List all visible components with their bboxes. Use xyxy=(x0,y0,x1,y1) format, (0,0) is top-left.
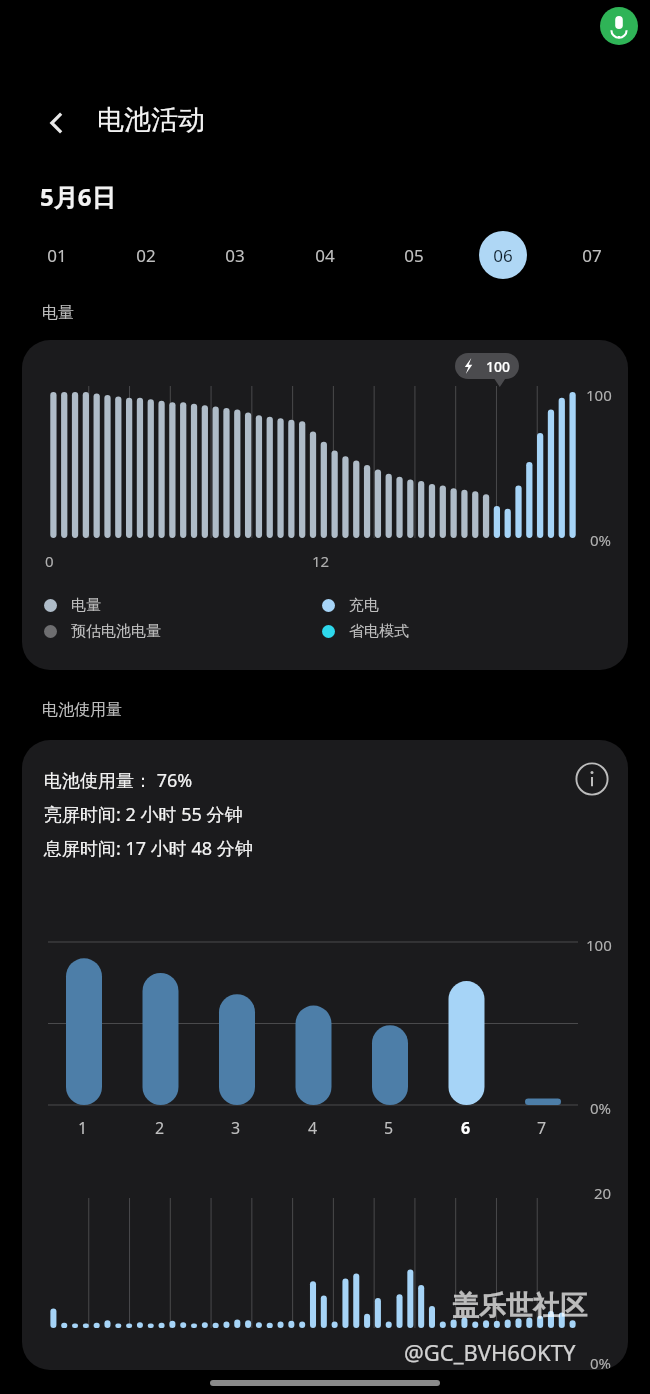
staticText: 06 xyxy=(493,244,513,267)
staticText: 20 xyxy=(594,1183,612,1203)
staticText: 1 xyxy=(78,1117,88,1139)
staticText: 0% xyxy=(590,1353,612,1370)
staticText: 亮屏时间: 2 小时 55 分钟 xyxy=(44,802,243,827)
staticText: 息屏时间: 17 小时 48 分钟 xyxy=(44,836,253,861)
button[interactable]: 07 xyxy=(568,231,616,279)
staticText: 省电模式 xyxy=(349,622,409,641)
staticText: 12 xyxy=(312,551,330,571)
staticText: 100 xyxy=(486,357,511,376)
staticText: 01 xyxy=(47,244,67,267)
staticText: 100 xyxy=(586,935,612,955)
staticText: @GC_BVH6OKTY xyxy=(404,1337,576,1367)
button[interactable]: Voice assistant xyxy=(600,7,638,45)
staticText: 2 xyxy=(155,1117,165,1139)
button[interactable]: Information xyxy=(22,740,628,1370)
staticText: 04 xyxy=(315,244,335,267)
staticText: 6 xyxy=(461,1117,471,1139)
button[interactable]: 100 xyxy=(22,340,628,670)
button[interactable]: 01 xyxy=(33,231,81,279)
button[interactable]: 02 xyxy=(122,231,170,279)
button[interactable]: 03 xyxy=(211,231,259,279)
staticText: 100 xyxy=(586,385,612,405)
button[interactable]: 04 xyxy=(301,231,349,279)
staticText: 4 xyxy=(308,1117,318,1139)
staticText: 03 xyxy=(225,244,245,267)
staticText: 电池使用量 xyxy=(42,700,122,720)
staticText: 电量 xyxy=(71,596,101,615)
staticText: 05 xyxy=(404,244,424,267)
staticText: 7 xyxy=(537,1117,547,1139)
staticText: 电池活动 xyxy=(97,103,205,137)
staticText: 07 xyxy=(582,244,602,267)
staticText: 盖乐世社区 xyxy=(452,1289,587,1323)
staticText: 0% xyxy=(590,1098,612,1118)
staticText: 预估电池电量 xyxy=(71,622,161,641)
staticText: 02 xyxy=(136,244,156,267)
staticText: 0 xyxy=(45,551,54,571)
staticText: 电池使用量： 76% xyxy=(44,768,193,793)
staticText: 电量 xyxy=(42,303,74,323)
staticText: 5月6日 xyxy=(40,180,116,213)
staticText: 充电 xyxy=(349,596,379,615)
button[interactable]: Back xyxy=(34,100,80,146)
staticText: 3 xyxy=(231,1117,241,1139)
button[interactable]: Information xyxy=(570,757,614,801)
staticText: 5 xyxy=(384,1117,394,1139)
button[interactable]: 06 xyxy=(479,231,527,279)
staticText: 0% xyxy=(590,530,612,550)
button[interactable]: 05 xyxy=(390,231,438,279)
